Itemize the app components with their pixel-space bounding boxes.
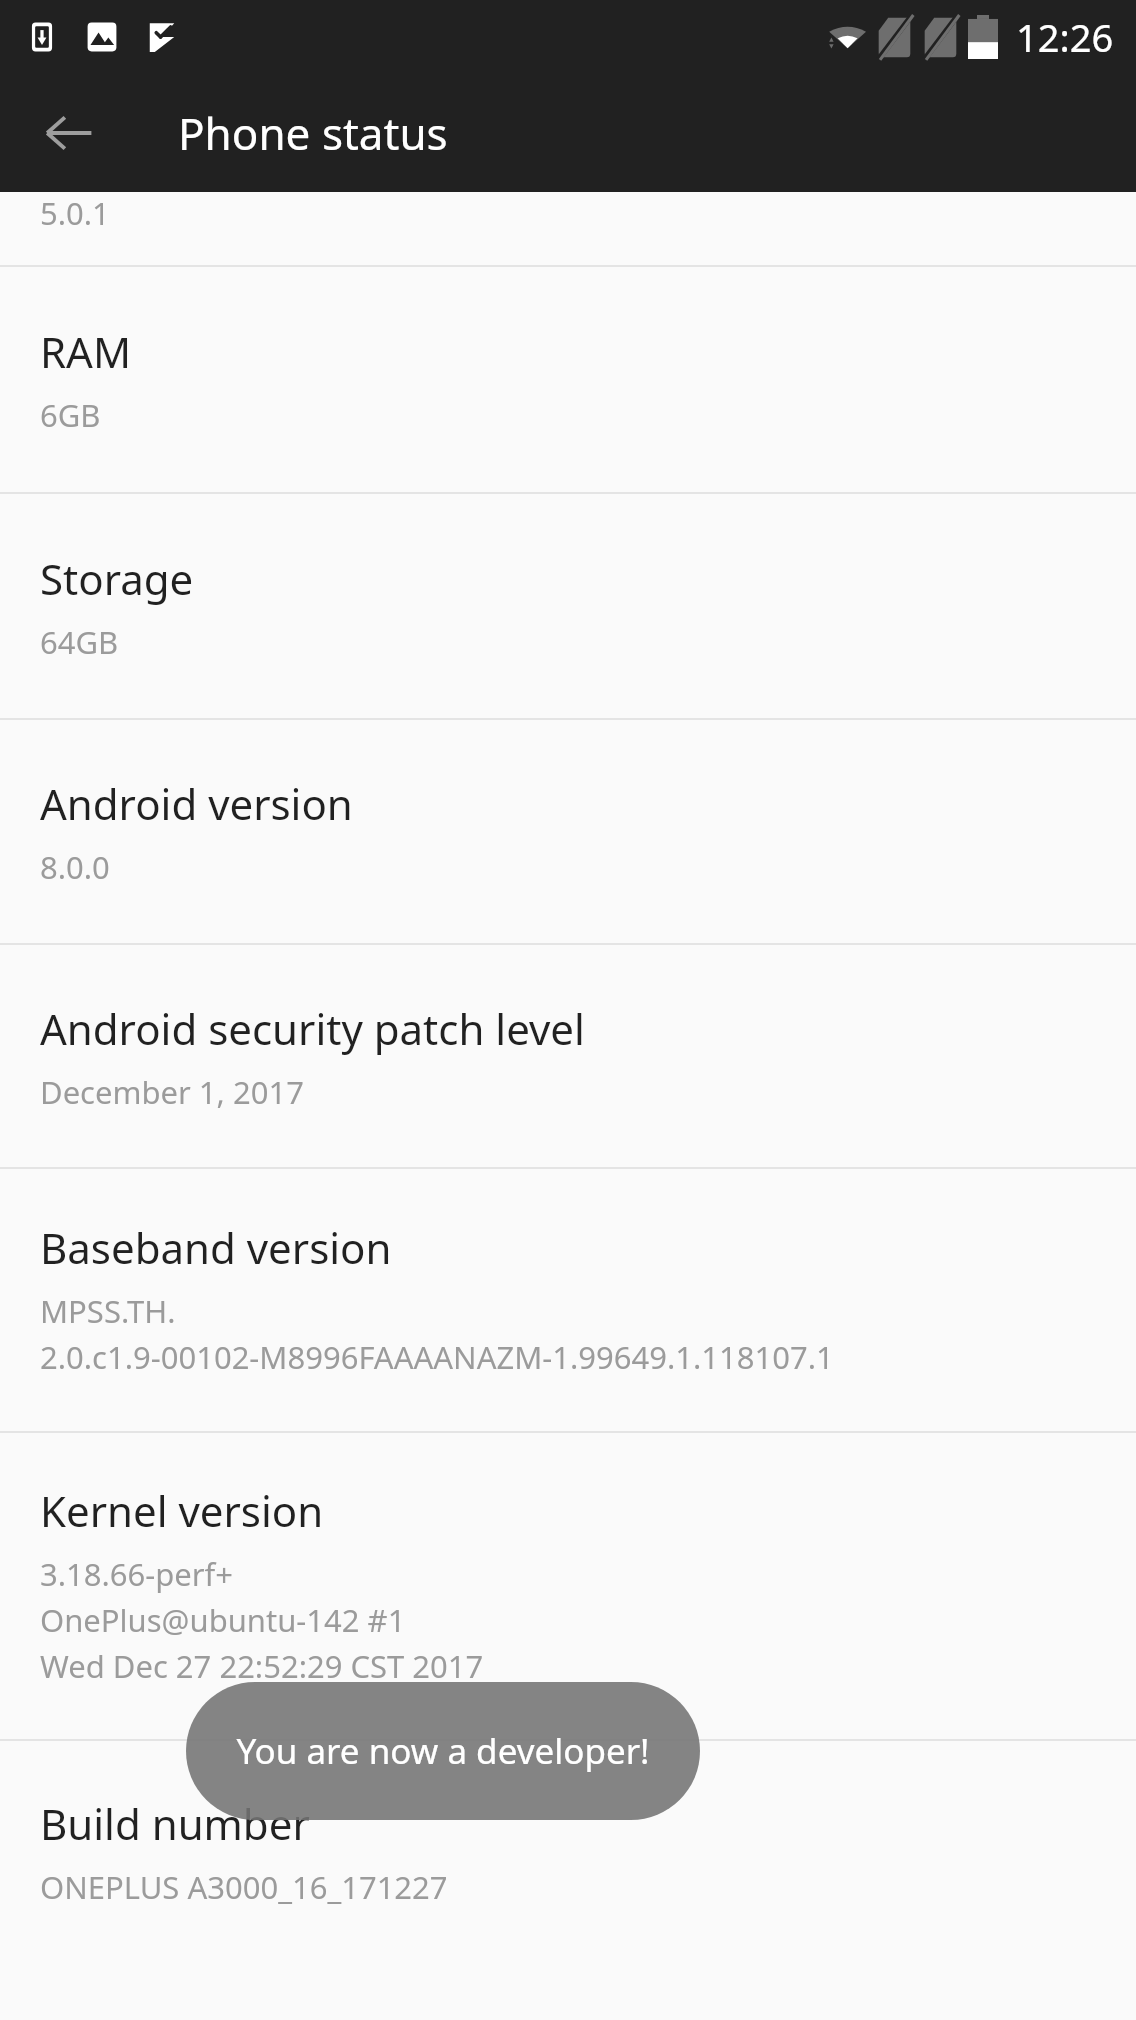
staticText: OnePlus@ubuntu-142 #1 xyxy=(40,1599,406,1641)
staticText: Android version xyxy=(40,775,353,832)
staticText: You are now a developer! xyxy=(236,1727,650,1775)
staticText: MPSS.TH. xyxy=(40,1290,176,1332)
staticText: Android security patch level xyxy=(40,1000,585,1057)
button[interactable]: Android security patch level xyxy=(0,945,1136,1167)
staticText: Baseband version xyxy=(40,1219,392,1276)
staticText: Build number xyxy=(40,1795,310,1852)
button[interactable]: Storage xyxy=(0,494,1136,718)
staticText: December 1, 2017 xyxy=(40,1071,304,1113)
staticText: 5.0.1 xyxy=(40,192,110,234)
staticText: 8.0.0 xyxy=(40,846,110,888)
staticText: 2.0.c1.9-00102-M8996FAAAANAZM-1.99649.1.… xyxy=(40,1336,834,1378)
staticText: 3.18.66-perf+ xyxy=(40,1553,234,1595)
staticText: RAM xyxy=(40,323,132,380)
staticText: Wed Dec 27 22:52:29 CST 2017 xyxy=(40,1645,484,1687)
button[interactable]: Baseband version xyxy=(0,1169,1136,1431)
button[interactable]: Kernel version xyxy=(0,1433,1136,1739)
button[interactable]: Back xyxy=(26,91,110,175)
staticText: Storage xyxy=(40,550,194,607)
staticText: ONEPLUS A3000_16_171227 xyxy=(40,1866,448,1908)
staticText: Phone status xyxy=(178,103,448,163)
button[interactable]: 5.0.1 xyxy=(0,192,1136,265)
button[interactable]: RAM xyxy=(0,267,1136,492)
staticText: 6GB xyxy=(40,394,101,436)
button[interactable]: Build number xyxy=(0,1741,1136,1961)
staticText: 64GB xyxy=(40,621,119,663)
button[interactable]: Android version xyxy=(0,720,1136,943)
staticText: Kernel version xyxy=(40,1482,324,1539)
staticText: 12:26 xyxy=(1016,11,1114,63)
